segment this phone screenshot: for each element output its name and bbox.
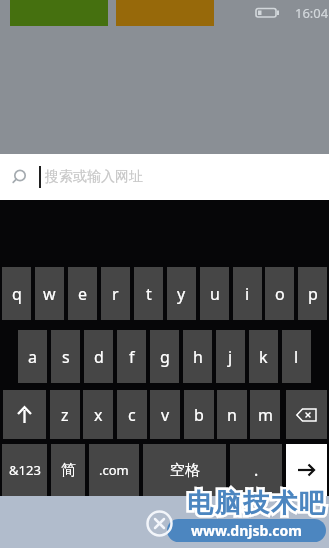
button[interactable]: x: [83, 390, 113, 439]
button[interactable]: .: [230, 444, 282, 496]
button[interactable]: o: [265, 267, 294, 320]
staticText: 空格: [170, 461, 200, 480]
staticText: y: [177, 283, 186, 305]
button[interactable]: d: [84, 330, 113, 383]
staticText: o: [275, 283, 285, 305]
staticText: m: [258, 404, 273, 426]
staticText: c: [128, 404, 136, 426]
button[interactable]: h: [183, 330, 212, 383]
staticText: f: [129, 346, 135, 368]
staticText: n: [227, 404, 237, 426]
button[interactable]: t: [134, 267, 163, 320]
staticText: h: [193, 346, 203, 368]
staticText: v: [161, 404, 170, 426]
staticText: l: [294, 346, 299, 368]
staticText: a: [28, 346, 37, 368]
staticText: www.dnjsb.com: [191, 521, 302, 540]
staticText: 电脑技术吧: [186, 487, 326, 520]
button[interactable]: c: [117, 390, 147, 439]
button[interactable]: &123: [2, 444, 47, 496]
staticText: s: [62, 346, 70, 368]
button[interactable]: m: [250, 390, 280, 439]
button[interactable]: j: [216, 330, 245, 383]
staticText: r: [112, 283, 119, 305]
staticText: t: [146, 283, 152, 305]
staticText: 16:04: [295, 4, 329, 22]
staticText: z: [61, 404, 69, 426]
button[interactable]: [286, 390, 327, 439]
staticText: j: [228, 346, 233, 368]
staticText: .: [254, 459, 259, 481]
button[interactable]: i: [233, 267, 262, 320]
staticText: &123: [9, 461, 41, 479]
button[interactable]: w: [35, 267, 64, 320]
staticText: g: [160, 346, 170, 368]
button[interactable]: k: [249, 330, 278, 383]
staticText: .com: [99, 461, 129, 479]
staticText: p: [308, 283, 318, 305]
button[interactable]: l: [282, 330, 311, 383]
staticText: b: [194, 404, 204, 426]
button[interactable]: z: [50, 390, 80, 439]
button[interactable]: y: [167, 267, 196, 320]
button[interactable]: 搜索或输入网址: [0, 154, 329, 200]
button[interactable]: www.dnjsb.com: [167, 519, 326, 542]
staticText: 简: [61, 461, 76, 480]
staticText: d: [94, 346, 104, 368]
button[interactable]: r: [101, 267, 130, 320]
staticText: e: [78, 283, 88, 305]
staticText: q: [12, 283, 22, 305]
staticText: i: [245, 283, 250, 305]
button[interactable]: g: [150, 330, 179, 383]
button[interactable]: 简: [51, 444, 85, 496]
button[interactable]: .com: [89, 444, 139, 496]
button[interactable]: f: [117, 330, 146, 383]
button[interactable]: b: [184, 390, 214, 439]
button[interactable]: s: [51, 330, 80, 383]
button[interactable]: 空格: [143, 444, 226, 496]
button[interactable]: e: [68, 267, 97, 320]
staticText: k: [259, 346, 268, 368]
button[interactable]: a: [18, 330, 47, 383]
button[interactable]: u: [200, 267, 229, 320]
staticText: w: [43, 283, 56, 305]
button[interactable]: [286, 444, 327, 496]
staticText: u: [210, 283, 220, 305]
staticText: 电脑技术吧: [186, 487, 326, 520]
staticText: x: [94, 404, 103, 426]
button[interactable]: [3, 390, 46, 439]
button[interactable]: p: [298, 267, 327, 320]
button[interactable]: v: [150, 390, 180, 439]
staticText: 搜索或输入网址: [45, 168, 143, 186]
button[interactable]: q: [2, 267, 31, 320]
button[interactable]: n: [217, 390, 247, 439]
